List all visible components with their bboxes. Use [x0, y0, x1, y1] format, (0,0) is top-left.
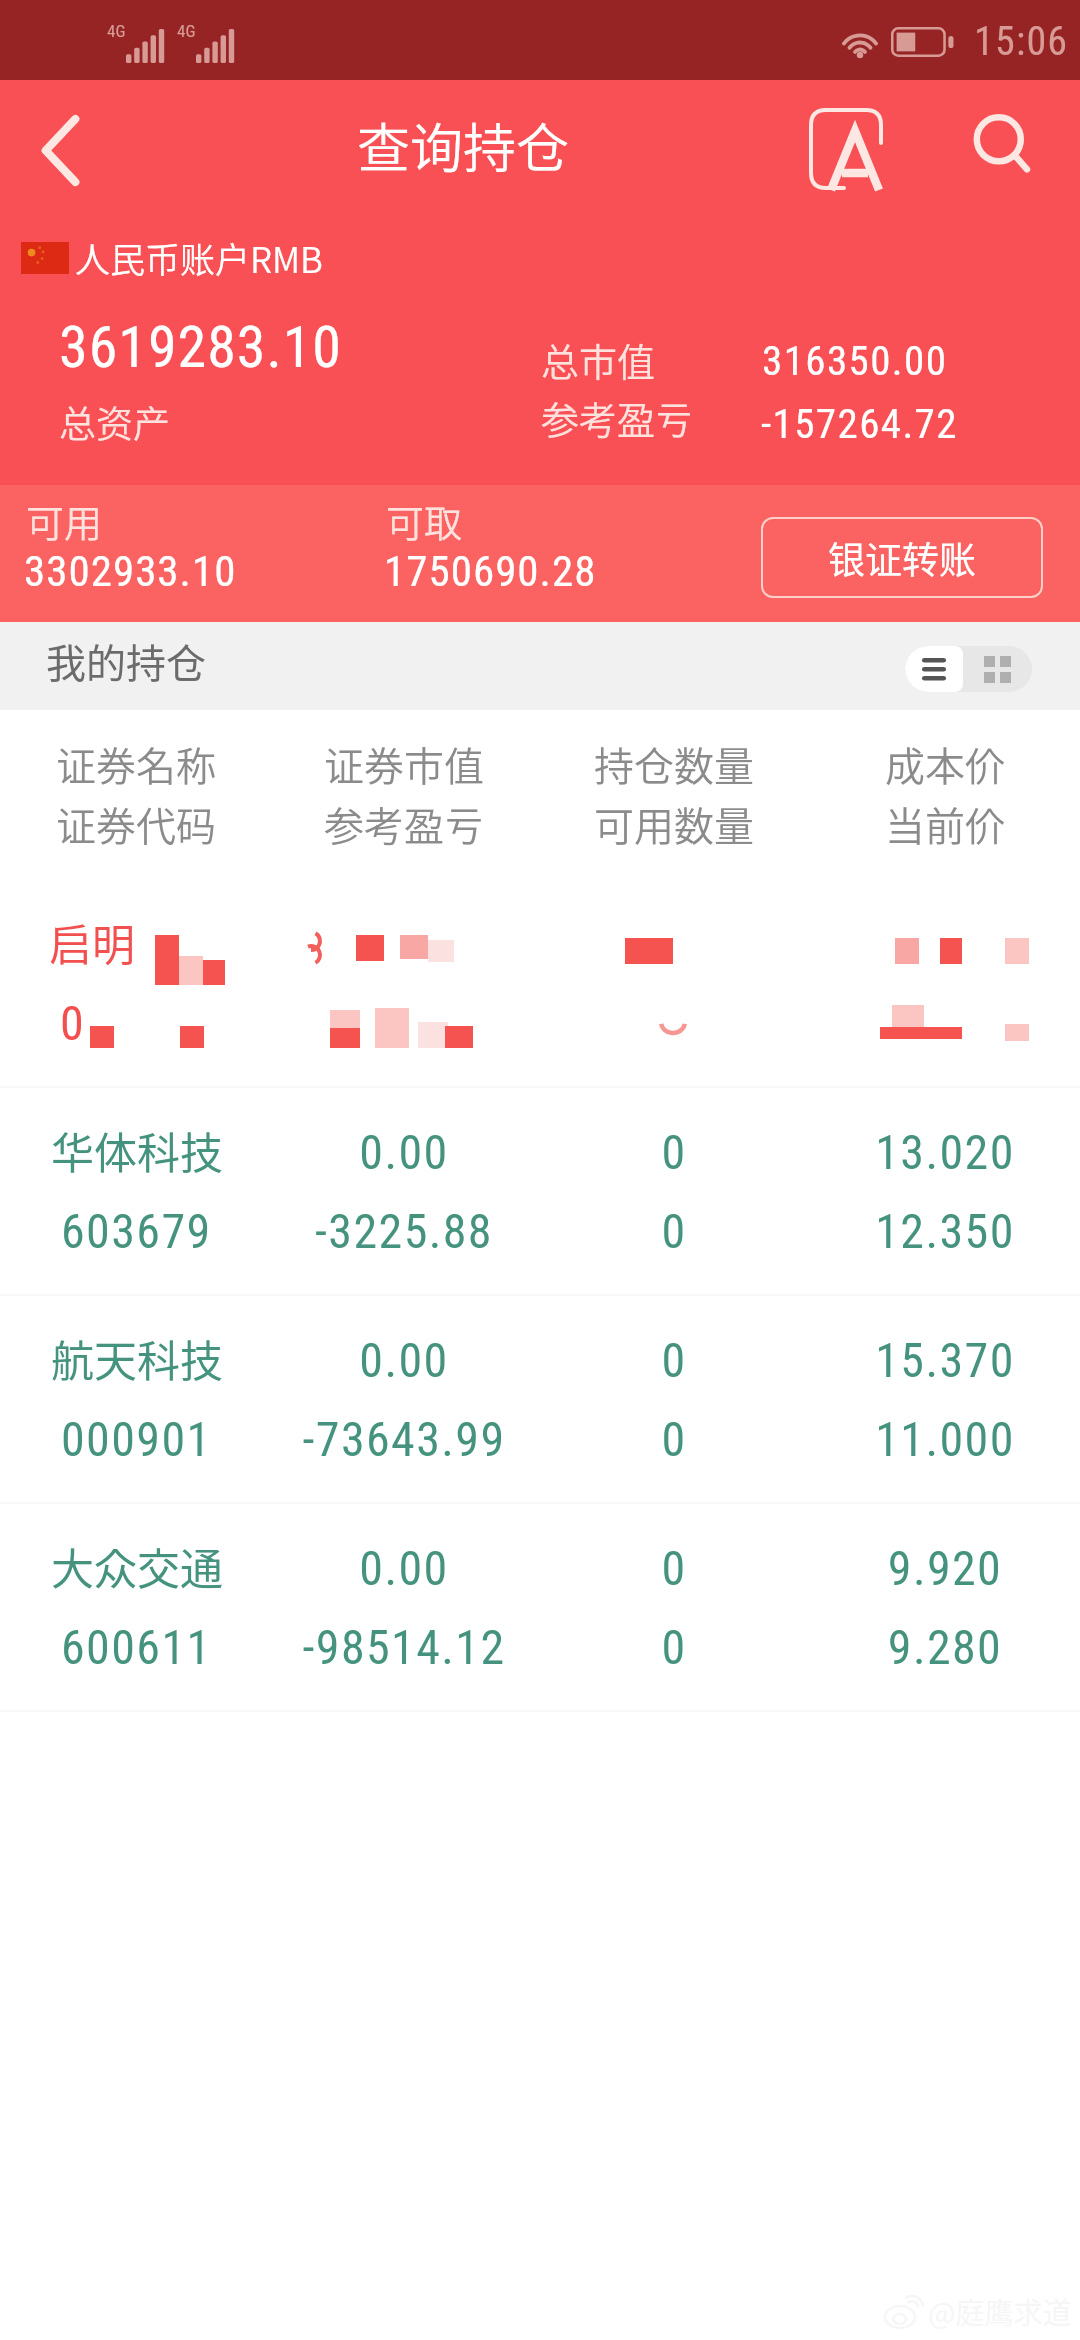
- staticText: 13.020: [745, 1124, 1080, 1180]
- staticText: 成本价: [745, 735, 1080, 793]
- staticText: 12.350: [745, 1203, 1080, 1259]
- staticText: 4G: [107, 21, 126, 41]
- staticText: 3302933.10: [24, 546, 237, 596]
- staticText: 0.00: [204, 1332, 604, 1388]
- staticText: 000901: [61, 1411, 212, 1467]
- staticText: 证券名称: [56, 735, 216, 793]
- staticText: 603679: [61, 1203, 212, 1259]
- staticText: 0.00: [204, 1124, 604, 1180]
- button[interactable]: 大众交通: [0, 1504, 1080, 1710]
- button[interactable]: 启明: [0, 880, 1080, 1086]
- button[interactable]: Back: [10, 100, 110, 200]
- staticText: 总市值: [541, 332, 656, 387]
- staticText: 4G: [177, 21, 196, 41]
- staticText: 0: [474, 1332, 874, 1388]
- staticText: 0: [474, 1540, 874, 1596]
- staticText: -98514.12: [204, 1619, 604, 1675]
- staticText: 15:06: [974, 18, 1069, 65]
- staticText: 华体科技: [51, 1119, 223, 1181]
- staticText: @庭鹰求道: [928, 2290, 1072, 2332]
- staticText: 316350.00: [762, 337, 948, 385]
- button[interactable]: List view: [905, 646, 963, 692]
- staticText: 我的持仓: [46, 632, 206, 690]
- staticText: 持仓数量: [474, 735, 874, 793]
- staticText: 可用: [26, 493, 103, 548]
- staticText: 当前价: [745, 795, 1080, 853]
- button[interactable]: Font size: [798, 100, 894, 196]
- staticText: 11.000: [745, 1411, 1080, 1467]
- staticText: 启明: [49, 911, 135, 973]
- staticText: -157264.72: [761, 400, 958, 448]
- staticText: 9.280: [745, 1619, 1080, 1675]
- staticText: 0: [60, 995, 86, 1051]
- staticText: 0: [474, 1619, 874, 1675]
- button[interactable]: Grid view: [963, 646, 1032, 692]
- staticText: 3619283.10: [59, 313, 342, 381]
- staticText: 证券市值: [204, 735, 604, 793]
- staticText: -3225.88: [204, 1203, 604, 1259]
- staticText: 总资产: [59, 395, 170, 449]
- staticText: 可用数量: [474, 795, 874, 853]
- staticText: 证券代码: [56, 795, 216, 853]
- staticText: 0: [474, 1411, 874, 1467]
- staticText: 0.00: [204, 1540, 604, 1596]
- staticText: 航天科技: [51, 1327, 223, 1389]
- button[interactable]: 银证转账: [761, 517, 1043, 598]
- staticText: 15.370: [745, 1332, 1080, 1388]
- button[interactable]: 航天科技: [0, 1296, 1080, 1502]
- staticText: 参考盈亏: [204, 795, 604, 853]
- staticText: 9.920: [745, 1540, 1080, 1596]
- staticText: 0: [474, 1124, 874, 1180]
- staticText: 银证转账: [828, 531, 976, 585]
- button[interactable]: Search: [957, 100, 1053, 196]
- staticText: 1750690.28: [384, 546, 597, 596]
- staticText: 大众交通: [51, 1535, 223, 1597]
- staticText: 0: [474, 1203, 874, 1259]
- staticText: -73643.99: [204, 1411, 604, 1467]
- button[interactable]: 华体科技: [0, 1088, 1080, 1294]
- staticText: 可取: [386, 493, 463, 548]
- staticText: 人民币账户RMB: [75, 232, 323, 283]
- staticText: 参考盈亏: [541, 390, 694, 445]
- staticText: 查询持仓: [357, 107, 569, 184]
- staticText: 600611: [61, 1619, 212, 1675]
